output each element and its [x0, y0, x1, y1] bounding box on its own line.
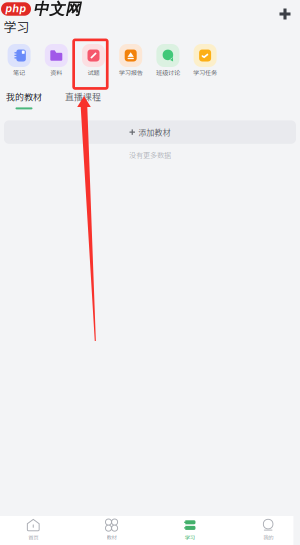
staticText: 首页	[28, 534, 38, 541]
staticText: 直播课程	[65, 90, 101, 103]
button[interactable]: 学习报告	[112, 44, 149, 77]
button[interactable]: 资料	[38, 44, 75, 77]
button[interactable]: 学习	[151, 516, 229, 545]
staticText: 学习	[185, 534, 195, 541]
staticText: 中文网	[33, 0, 81, 19]
staticText: 没有更多数据	[129, 150, 171, 160]
staticText: 学习	[3, 17, 29, 36]
button[interactable]: 我的教材	[0, 90, 48, 109]
staticText: 资料	[50, 68, 62, 77]
button[interactable]: 首页	[0, 516, 72, 545]
staticText: 添加教材	[138, 126, 170, 138]
staticText: 学习任务	[193, 68, 217, 77]
button[interactable]: 笔记	[0, 44, 38, 77]
button[interactable]: 班级讨论	[149, 44, 186, 77]
staticText: 我的	[263, 534, 273, 541]
staticText: 学习报告	[119, 68, 143, 77]
button[interactable]: 学习任务	[186, 44, 224, 77]
staticText: 班级讨论	[156, 68, 180, 77]
button[interactable]: Add	[273, 2, 297, 26]
staticText: php	[5, 2, 26, 15]
staticText: 教材	[107, 534, 117, 541]
button[interactable]: 教材	[72, 516, 151, 545]
staticText: 试题	[87, 68, 99, 77]
button[interactable]: 我的	[229, 516, 300, 545]
button[interactable]: 试题	[75, 44, 112, 77]
staticText: 我的教材	[6, 90, 42, 103]
button[interactable]: 直播课程	[59, 90, 107, 109]
button[interactable]: 添加教材	[4, 120, 296, 144]
staticText: 笔记	[13, 68, 25, 77]
